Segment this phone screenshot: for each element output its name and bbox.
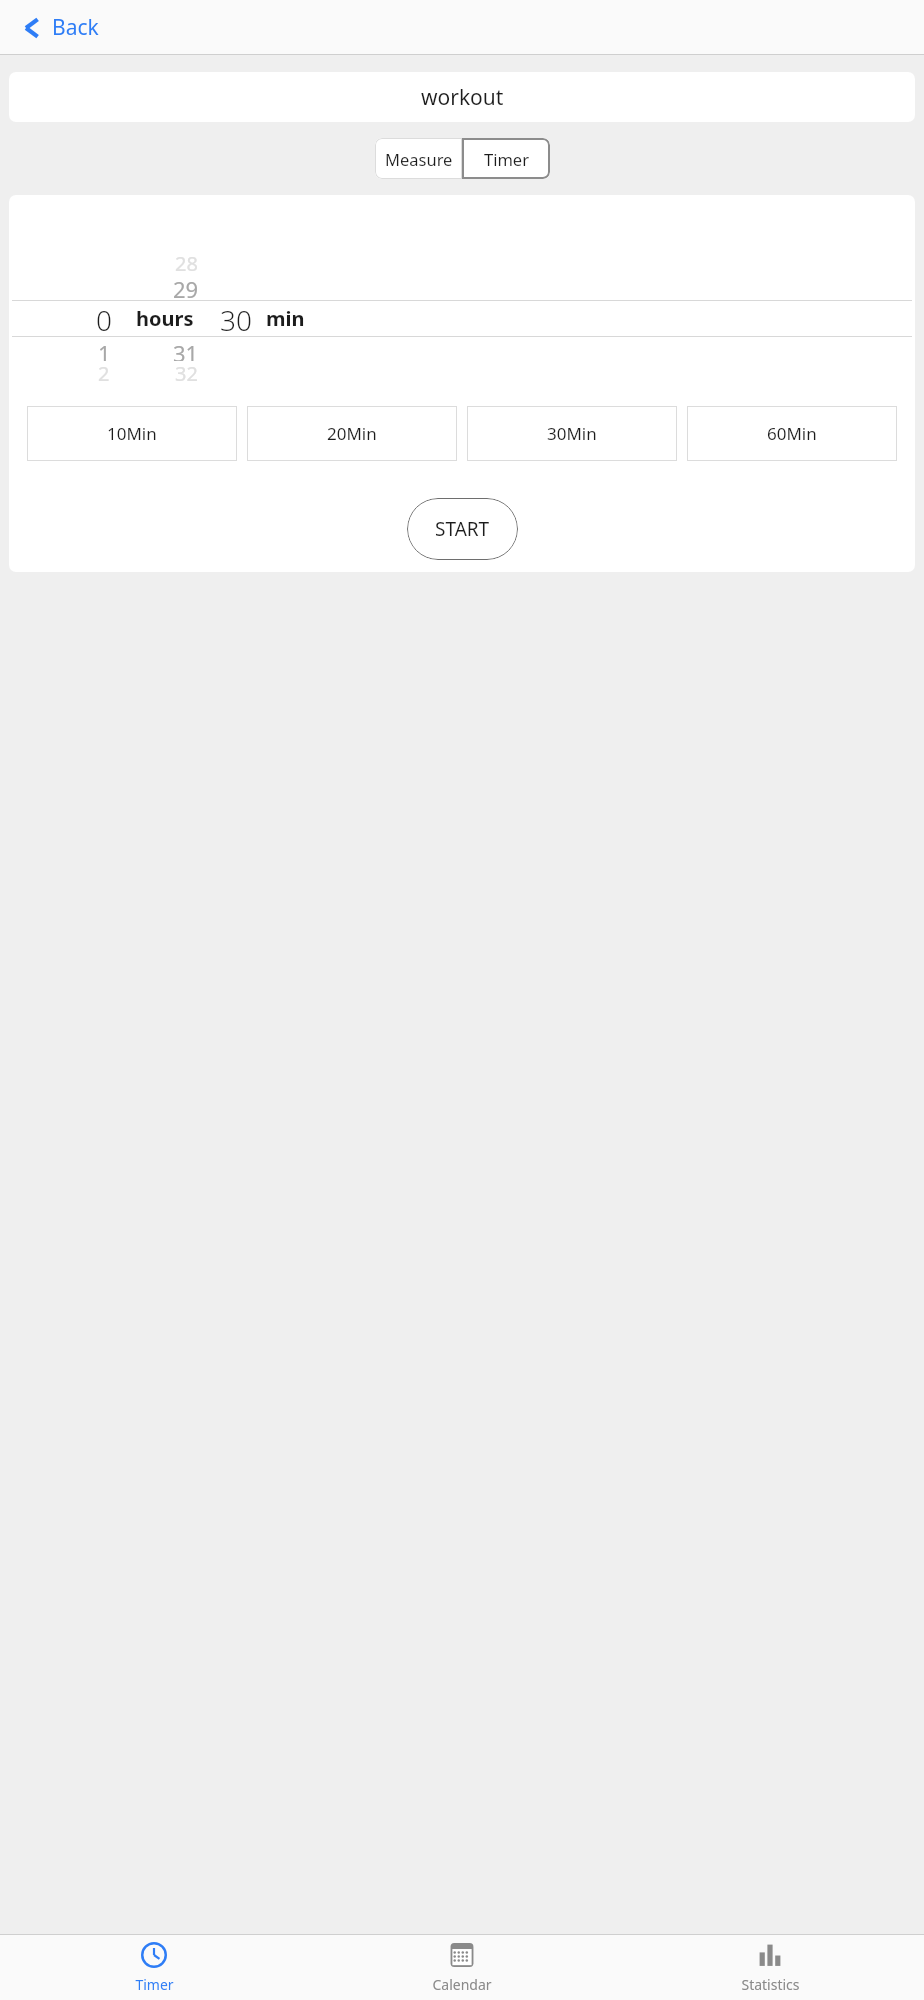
staticText: Timer <box>484 148 529 170</box>
staticText: 60Min <box>767 422 817 445</box>
button[interactable]: 60Min <box>687 406 897 461</box>
staticText: 32 <box>175 360 198 382</box>
staticText: 2 <box>98 360 110 382</box>
staticText: 31 <box>173 338 199 361</box>
button[interactable]: Timer <box>0 1935 308 2000</box>
staticText: 29 <box>173 274 199 298</box>
staticText: 1 <box>98 338 111 361</box>
button[interactable]: Back <box>14 7 107 48</box>
button[interactable]: 20Min <box>247 406 457 461</box>
button[interactable]: Measure <box>375 138 462 179</box>
staticText: Statistics <box>741 1975 800 1994</box>
staticText: hours <box>136 305 194 332</box>
staticText: min <box>266 305 305 332</box>
staticText: 30Min <box>547 422 597 445</box>
button[interactable]: 10Min <box>27 406 237 461</box>
button[interactable]: Calendar <box>308 1935 616 2000</box>
staticText: 30 <box>220 301 252 335</box>
staticText: 0 <box>96 301 112 335</box>
staticText: Calendar <box>432 1975 492 1994</box>
button[interactable]: START <box>407 498 518 560</box>
staticText: 10Min <box>107 422 157 445</box>
staticText: START <box>435 516 490 542</box>
staticText: workout <box>421 83 504 112</box>
staticText: Timer <box>135 1975 174 1994</box>
staticText: Measure <box>385 148 453 170</box>
button[interactable]: Timer <box>462 138 550 179</box>
staticText: 20Min <box>327 422 377 445</box>
button[interactable]: Statistics <box>616 1935 924 2000</box>
button[interactable]: workout <box>9 72 915 122</box>
staticText: Back <box>52 13 99 42</box>
staticText: 28 <box>175 250 198 274</box>
button[interactable]: 30Min <box>467 406 677 461</box>
